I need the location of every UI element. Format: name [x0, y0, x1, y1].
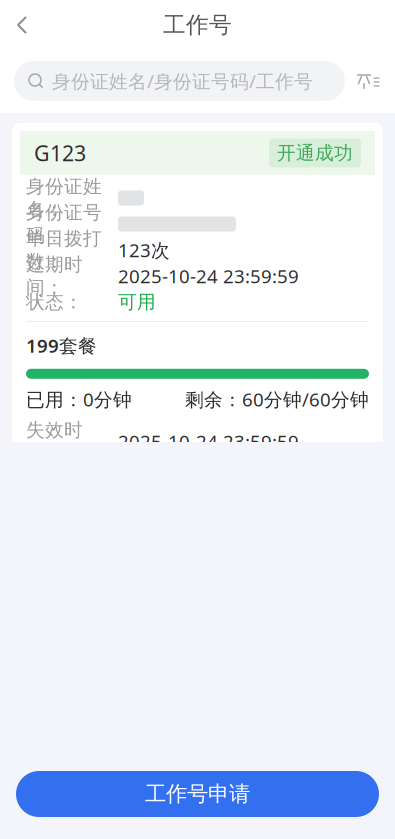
staticText: G123: [34, 139, 86, 167]
staticText: 过期时间：: [26, 253, 83, 299]
button[interactable]: 工作号申请: [16, 771, 379, 817]
button[interactable]: 返回: [0, 3, 44, 47]
staticText: 可用: [118, 290, 156, 313]
staticText: 身份证姓名：: [26, 175, 102, 221]
staticText: 失效时间：: [26, 419, 83, 464]
staticText: 工作号: [163, 11, 232, 39]
staticText: 身份证姓名/身份证号码/工作号: [52, 69, 313, 93]
staticText: 单日拨打数：: [26, 227, 102, 273]
staticText: 剩余：60分钟/60分钟: [185, 387, 369, 412]
staticText: 199套餐: [26, 333, 97, 358]
staticText: 123次: [118, 238, 170, 262]
button[interactable]: 身份证姓名/身份证号码/工作号: [14, 61, 345, 101]
staticText: 2025-10-24 23:59:59: [118, 429, 299, 454]
staticText: 2025-10-24 23:59:59: [118, 264, 299, 288]
staticText: 状态：: [26, 290, 83, 313]
staticText: 工作号申请: [145, 781, 250, 807]
button[interactable]: 筛选: [355, 61, 381, 101]
staticText: 身份证号码：: [26, 201, 102, 247]
staticText: 已用：0分钟: [26, 387, 132, 412]
staticText: 开通成功: [277, 141, 353, 164]
